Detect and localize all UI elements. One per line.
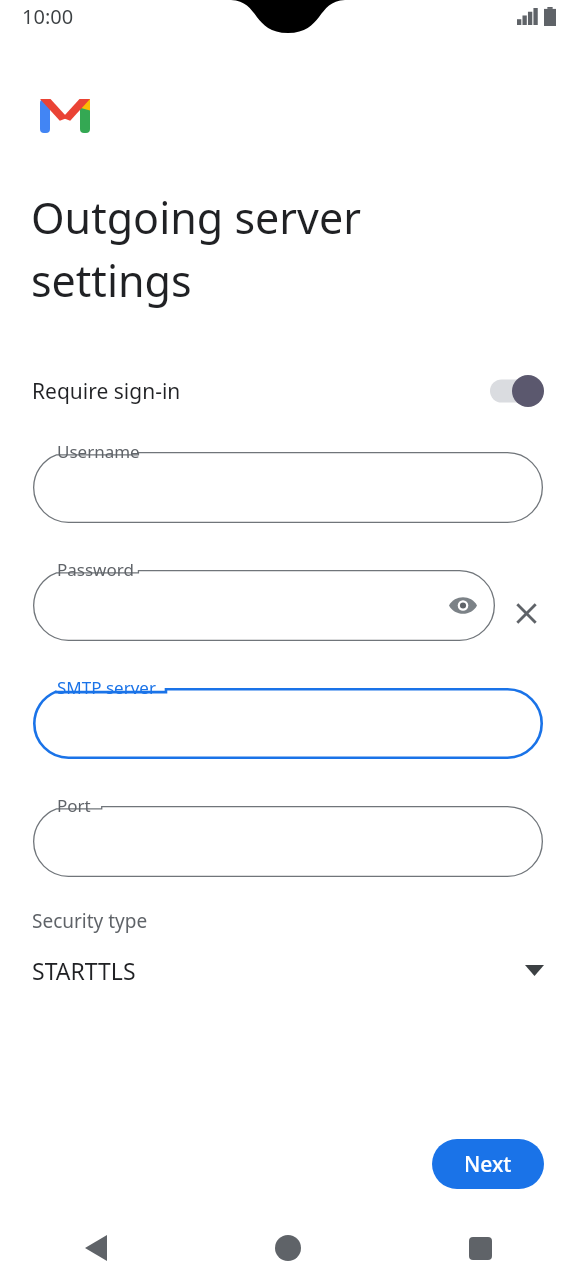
button[interactable]: Clear password	[506, 593, 546, 633]
staticText: Outgoing server settings	[31, 188, 361, 310]
staticText: Username	[57, 440, 140, 463]
staticText: Next	[464, 1150, 512, 1179]
button[interactable]: Password	[33, 557, 495, 641]
staticText: SMTP server	[57, 676, 156, 699]
button[interactable]: Require sign-in	[0, 365, 576, 417]
button[interactable]: Next	[432, 1139, 544, 1189]
button[interactable]: Port	[33, 793, 543, 877]
staticText: Security type	[32, 908, 148, 934]
button[interactable]: SMTP server	[33, 675, 543, 759]
staticText: Password	[57, 558, 134, 581]
button[interactable]: Show password	[443, 585, 483, 625]
button[interactable]: Username	[33, 439, 543, 523]
staticText: STARTTLS	[32, 955, 136, 986]
button[interactable]: Security type	[0, 908, 576, 1000]
staticText: Require sign-in	[32, 377, 181, 406]
staticText: 10:00	[22, 3, 74, 30]
button[interactable]: Home	[192, 1216, 384, 1280]
button[interactable]: Back	[0, 1216, 192, 1280]
staticText: Port	[57, 794, 91, 817]
button[interactable]: Require sign-in toggle	[490, 375, 544, 407]
button[interactable]: Recent apps	[384, 1216, 576, 1280]
